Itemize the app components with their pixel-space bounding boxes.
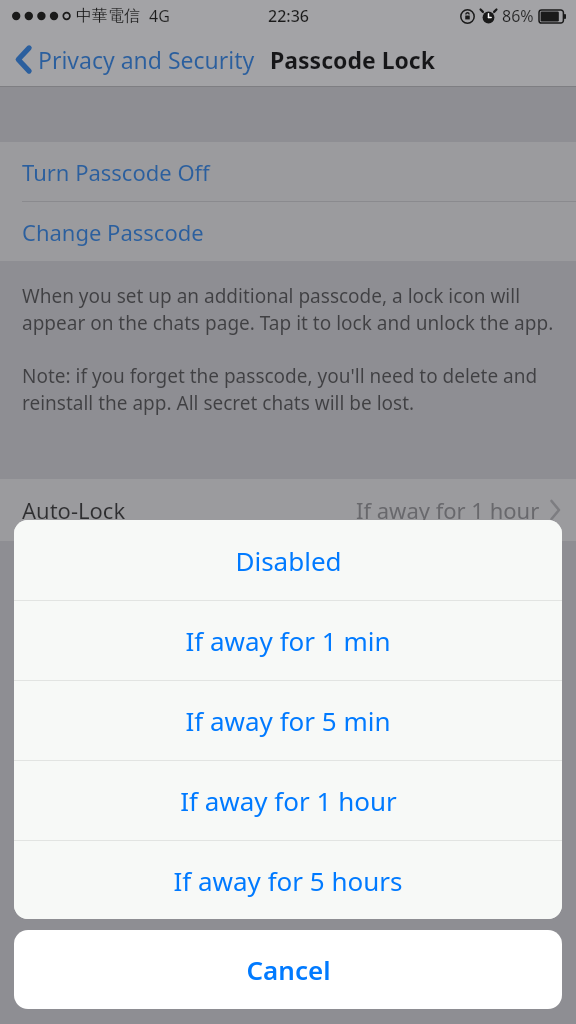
staticText: Change Passcode [22, 217, 204, 247]
staticText: If away for 1 hour [356, 495, 540, 525]
staticText: Cancel [246, 952, 331, 987]
button[interactable]: If away for 1 min [14, 601, 562, 680]
staticText: Turn Passcode Off [22, 157, 210, 187]
button[interactable]: If away for 5 min [14, 681, 562, 760]
staticText: If away for 5 min [185, 703, 391, 738]
button[interactable]: Turn Passcode Off [0, 142, 576, 201]
button[interactable]: Auto-Lock [0, 479, 576, 541]
staticText: Disabled [235, 543, 342, 578]
staticText: Privacy and Security [38, 44, 255, 75]
staticText: Note: if you forget the passcode, you'll… [22, 363, 556, 416]
button[interactable]: If away for 1 hour [14, 761, 562, 840]
button[interactable]: Change Passcode [0, 202, 576, 261]
staticText: When you set up an additional passcode, … [22, 283, 556, 336]
button[interactable]: If away for 5 hours [14, 841, 562, 919]
staticText: Auto-Lock [22, 495, 126, 525]
staticText: If away for 1 hour [180, 783, 397, 818]
staticText: If away for 1 min [185, 623, 391, 658]
button[interactable]: Disabled [14, 520, 562, 600]
staticText: 中華電信 [76, 6, 140, 26]
button[interactable]: Privacy and Security [0, 38, 263, 81]
staticText: If away for 5 hours [173, 863, 403, 898]
staticText: 4G [149, 5, 170, 27]
button[interactable]: Cancel [14, 930, 562, 1009]
staticText: 22:36 [268, 5, 309, 27]
staticText: Passcode Lock [270, 44, 436, 75]
staticText: 86% [502, 5, 534, 27]
